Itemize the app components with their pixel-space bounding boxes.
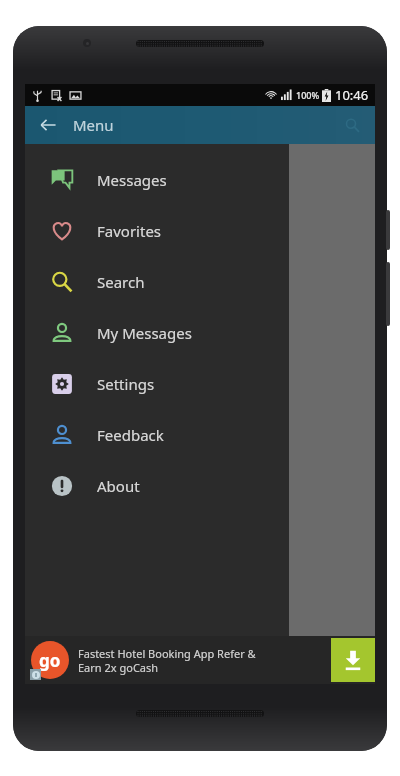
staticText: Favorites <box>97 221 162 241</box>
staticText: 10:46 <box>335 86 369 104</box>
button[interactable]: Install <box>331 638 375 682</box>
staticText: Search <box>97 272 145 292</box>
button[interactable]: About <box>25 460 289 511</box>
button[interactable]: Messages <box>25 154 289 205</box>
button[interactable]: Back <box>33 110 63 140</box>
button[interactable]: My Messages <box>25 307 289 358</box>
staticText: go <box>39 649 61 672</box>
button[interactable]: Feedback <box>25 409 289 460</box>
staticText: Menu <box>73 115 114 135</box>
staticText: Settings <box>97 374 155 394</box>
staticText: Messages <box>97 170 167 190</box>
button[interactable]: Search <box>25 256 289 307</box>
button[interactable]: Settings <box>25 358 289 409</box>
staticText: My Messages <box>97 323 192 343</box>
staticText: Feedback <box>97 425 164 445</box>
staticText: Fastest Hotel Booking App Refer & Earn 2… <box>78 646 331 675</box>
staticText: 100% <box>296 89 320 101</box>
button[interactable]: go <box>25 636 375 684</box>
staticText: About <box>97 476 140 496</box>
button[interactable]: Favorites <box>25 205 289 256</box>
